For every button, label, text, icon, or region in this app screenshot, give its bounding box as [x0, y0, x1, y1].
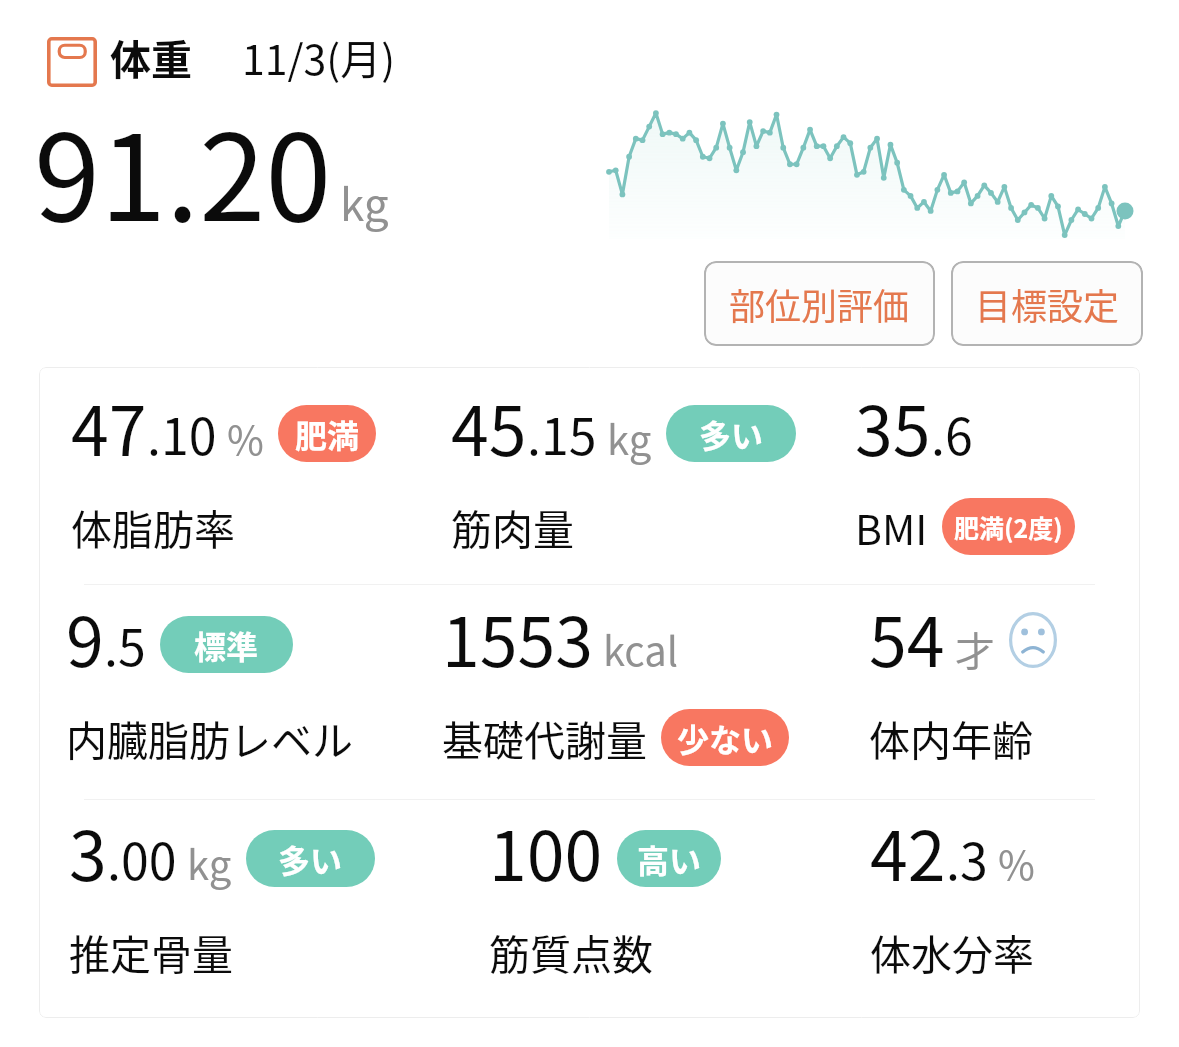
staticText: 少ない — [677, 715, 774, 761]
staticText: .00 — [107, 822, 177, 894]
staticText: 基礎代謝量 — [442, 708, 647, 767]
button[interactable]: Weight history chart — [609, 103, 1125, 239]
staticText: 45 — [451, 377, 527, 475]
staticText: 高い — [637, 836, 702, 882]
staticText: 推定骨量 — [69, 922, 233, 981]
staticText: kcal — [603, 620, 679, 678]
staticText: 目標設定 — [975, 278, 1120, 330]
staticText: 体水分率 — [870, 922, 1034, 981]
staticText: BMI — [855, 497, 928, 556]
staticText: 標準 — [194, 622, 259, 668]
button[interactable]: 47 — [39, 367, 406, 584]
other: Poor rating — [1009, 612, 1057, 668]
button[interactable]: 9 — [39, 585, 406, 799]
staticText: 91.20 — [34, 83, 332, 255]
staticText: 100 — [489, 802, 603, 900]
button[interactable]: 45 — [406, 367, 773, 584]
staticText: 部位別評価 — [729, 278, 910, 330]
staticText: 3 — [69, 802, 107, 900]
staticText: kg — [607, 409, 652, 467]
staticText: .5 — [104, 608, 146, 680]
staticText: 内臓脂肪レベル — [66, 708, 353, 767]
staticText: .10 — [147, 397, 217, 469]
button[interactable]: 100 — [406, 800, 773, 1018]
staticText: .6 — [931, 397, 973, 469]
button[interactable]: 35 — [773, 367, 1140, 584]
staticText: 体脂肪率 — [71, 497, 235, 556]
staticText: 42 — [870, 802, 946, 900]
staticText: 多い — [699, 411, 764, 457]
staticText: 体重 — [110, 27, 192, 86]
staticText: 多い — [278, 836, 343, 882]
staticText: 11/3(月) — [242, 27, 396, 86]
staticText: 9 — [66, 588, 104, 686]
staticText: 肥満 — [295, 411, 360, 457]
staticText: 筋肉量 — [451, 497, 574, 556]
staticText: % — [998, 834, 1035, 892]
button[interactable]: 部位別評価 — [704, 261, 935, 346]
button[interactable]: 54 — [773, 585, 1140, 799]
staticText: .3 — [946, 822, 988, 894]
button[interactable]: 3 — [39, 800, 406, 1018]
staticText: 才 — [955, 620, 995, 678]
other: Weight scale — [47, 37, 97, 87]
staticText: 54 — [869, 588, 945, 686]
button[interactable]: 42 — [773, 800, 1140, 1018]
staticText: 47 — [71, 377, 147, 475]
staticText: 肥満(2度) — [954, 509, 1063, 545]
button[interactable]: 目標設定 — [951, 261, 1143, 346]
staticText: 体内年齢 — [869, 708, 1033, 767]
button[interactable]: 1553 — [406, 585, 773, 799]
staticText: 35 — [855, 377, 931, 475]
staticText: kg — [340, 170, 389, 234]
staticText: 1553 — [442, 588, 593, 686]
staticText: .15 — [527, 397, 597, 469]
staticText: % — [227, 409, 264, 467]
staticText: 筋質点数 — [489, 922, 653, 981]
staticText: kg — [187, 834, 232, 892]
